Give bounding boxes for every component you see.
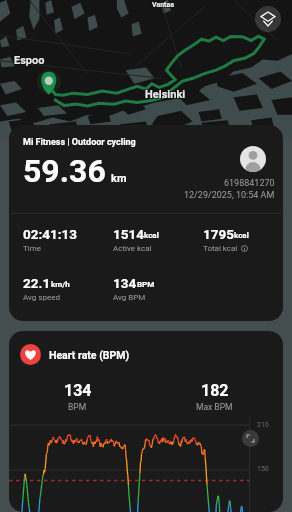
staticText: km [111, 172, 127, 185]
staticText: Max BPM [196, 402, 233, 412]
staticText: Espoo [13, 53, 44, 66]
button[interactable]: Expand chart [242, 430, 259, 447]
staticText: Espoo [14, 54, 45, 67]
staticText: BPM [137, 280, 155, 289]
staticText: Avg BPM [113, 293, 146, 302]
staticText: Espoo [15, 55, 46, 68]
staticText: 02:41:13 [23, 226, 78, 242]
staticText: Helsinki [144, 87, 185, 100]
staticText: 6198841270 [224, 178, 275, 189]
staticText: 150 [257, 465, 269, 473]
staticText: 1795 [203, 226, 234, 242]
staticText: Total kcal [203, 244, 238, 253]
staticText: Vantaa [151, 0, 173, 8]
staticText: 134 [64, 381, 92, 400]
staticText: 134 [113, 275, 137, 291]
staticText: 182 [201, 381, 229, 400]
staticText: 59.36 [23, 152, 106, 190]
button[interactable]: Profile [240, 146, 266, 172]
staticText: Vantaa [153, 2, 175, 10]
staticText: 12/29/2025, 10:54 AM [184, 190, 275, 201]
staticText: Helsinki [146, 89, 187, 102]
staticText: kcal [144, 231, 159, 240]
staticText: 210 [257, 421, 269, 429]
staticText: Mi Fitness | Outdoor cycling [23, 137, 136, 148]
staticText: Vantaa [152, 1, 174, 9]
staticText: Heart rate (BPM) [49, 349, 130, 361]
staticText: 1514 [113, 226, 144, 242]
staticText: Helsinki [145, 88, 186, 101]
staticText: BPM [68, 402, 87, 412]
staticText: Avg speed [23, 293, 60, 302]
button[interactable]: Map layers [255, 6, 281, 32]
staticText: Time [23, 244, 41, 253]
button[interactable]: Heart rate (BPM) [20, 344, 130, 365]
staticText: Active kcal [113, 244, 152, 253]
staticText: km/h [51, 280, 70, 289]
staticText: kcal [234, 231, 249, 240]
staticText: 22.1 [23, 275, 51, 291]
